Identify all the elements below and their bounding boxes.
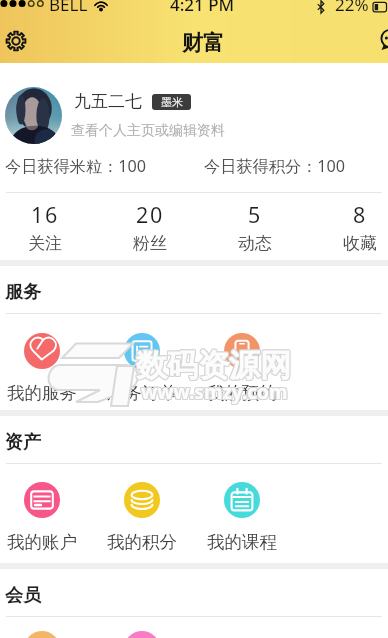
staticText: 我的账户 xyxy=(7,531,77,553)
staticText: www.smzy.com xyxy=(140,380,287,406)
staticText: www.smzy.com xyxy=(140,379,287,405)
button[interactable]: 8 xyxy=(315,200,388,254)
staticText: www.smzy.com xyxy=(141,379,288,405)
staticText: 九五二七 xyxy=(74,91,142,112)
staticText: BELL xyxy=(49,0,88,13)
staticText: 数码资源网 xyxy=(135,347,290,386)
button[interactable]: 我的账户 xyxy=(0,482,87,553)
staticText: www.smzy.com xyxy=(142,379,289,405)
staticText: 22% xyxy=(335,0,369,13)
staticText: www.smzy.com xyxy=(142,380,289,406)
staticText: 墨米 xyxy=(161,95,183,109)
button[interactable]: Messages xyxy=(379,29,388,51)
staticText: 4:21 PM xyxy=(170,0,235,13)
staticText: 收藏 xyxy=(343,233,377,254)
button[interactable]: 我的积分 xyxy=(97,482,187,553)
staticText: 20 xyxy=(136,200,164,229)
staticText: 数码资源网 xyxy=(137,347,292,386)
staticText: 我的积分 xyxy=(107,531,177,553)
staticText: 数码资源网 xyxy=(135,346,290,385)
staticText: 粉丝 xyxy=(133,233,167,254)
staticText: 数码资源网 xyxy=(135,345,290,384)
staticText: 数码资源网 xyxy=(137,345,292,384)
button[interactable]: 16 xyxy=(0,200,90,254)
staticText: 8 xyxy=(353,200,367,229)
button[interactable]: 5 xyxy=(210,200,300,254)
staticText: www.smzy.com xyxy=(142,378,289,404)
staticText: www.smzy.com xyxy=(141,380,288,406)
button[interactable]: 我的服务 xyxy=(0,333,87,404)
staticText: 服务 xyxy=(5,281,41,304)
button[interactable]: 20 xyxy=(105,200,195,254)
button[interactable]: Settings xyxy=(4,29,28,53)
staticText: 动态 xyxy=(238,233,272,254)
staticText: 财富 xyxy=(182,30,224,56)
button[interactable]: 我的预约 xyxy=(197,333,287,404)
button[interactable]: Member benefit xyxy=(124,631,160,638)
staticText: 16 xyxy=(31,200,59,229)
staticText: 服务订单 xyxy=(107,382,177,404)
staticText: www.smzy.com xyxy=(140,378,287,404)
staticText: 数码资源网 xyxy=(136,346,291,385)
button[interactable]: 查看个人主页或编辑资料 xyxy=(71,122,225,140)
button[interactable]: 我的课程 xyxy=(197,482,287,553)
staticText: 关注 xyxy=(28,233,62,254)
staticText: 今日获得积分：100 xyxy=(204,155,346,177)
staticText: 会员 xyxy=(5,584,41,607)
staticText: 我的服务 xyxy=(7,382,77,404)
staticText: 今日获得米粒：100 xyxy=(5,155,147,177)
staticText: 数码资源网 xyxy=(136,347,291,386)
staticText: 我的课程 xyxy=(207,531,277,553)
staticText: 我的预约 xyxy=(207,382,277,404)
staticText: www.smzy.com xyxy=(141,378,288,404)
staticText: 数码资源网 xyxy=(136,345,291,384)
staticText: 5 xyxy=(248,200,262,229)
button[interactable]: 服务订单 xyxy=(97,333,187,404)
staticText: 资产 xyxy=(5,431,41,454)
button[interactable]: Avatar xyxy=(5,87,62,144)
button[interactable]: Member level xyxy=(24,631,60,638)
button[interactable]: 九五二七 xyxy=(74,91,191,112)
staticText: 数码资源网 xyxy=(137,346,292,385)
